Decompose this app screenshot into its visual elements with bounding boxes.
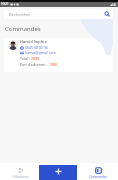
other: Rechercher [104, 11, 110, 17]
staticText: Hamid Sophie [20, 39, 47, 44]
staticText: 10:21 [1, 2, 9, 6]
staticText: hamid@gmail.com [25, 50, 56, 55]
staticText: Commandes [89, 175, 107, 179]
button[interactable]: Commandes [89, 167, 107, 180]
staticText: 0645 68 00 06 [25, 45, 48, 50]
staticText: Rechercher [9, 12, 31, 17]
staticText: Commandes [5, 25, 41, 33]
button[interactable]: Rechercher [4, 9, 113, 19]
staticText: Total : [20, 56, 31, 61]
button[interactable]: Hamid Sophie [4, 38, 113, 72]
staticText: Part d'adherent : [20, 62, 49, 67]
staticText: 1300 [49, 62, 58, 67]
staticText: 2000 [31, 56, 40, 61]
button[interactable]: Ajouter [39, 165, 77, 180]
button[interactable]: Utilisateurs [12, 167, 29, 180]
staticText: Utilisateurs [12, 175, 29, 179]
